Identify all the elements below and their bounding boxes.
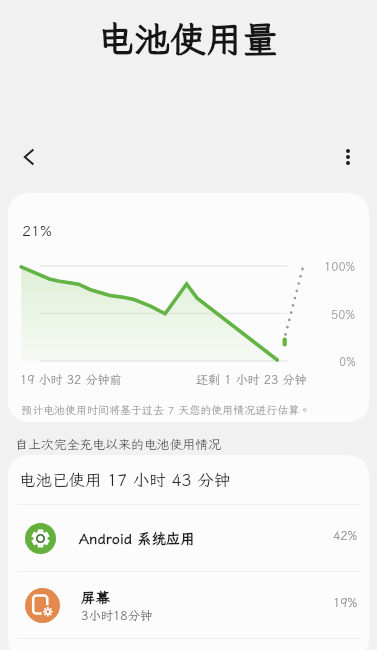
staticText: 42% [333, 527, 358, 543]
staticText: 屏幕 [81, 588, 110, 607]
staticText: 21% [22, 221, 53, 241]
staticText: 19 小时 32 分钟前 [20, 372, 122, 388]
staticText: 50% [331, 307, 356, 323]
button[interactable]: 屏幕 [8, 572, 369, 638]
staticText: Android 系统应用 [79, 529, 195, 548]
staticText: 还剩 1 小时 23 分钟 [196, 372, 307, 388]
staticText: 100% [324, 259, 356, 275]
button[interactable]: Back [7, 135, 51, 179]
button[interactable]: More options [326, 135, 370, 179]
staticText: 电池已使用 17 小时 43 分钟 [19, 469, 231, 491]
staticText: 预计电池使用时间将基于过去 7 天您的使用情况进行估算。 [21, 403, 311, 417]
staticText: 自上次完全充电以来的电池使用情况 [15, 436, 222, 453]
staticText: 电池使用量 [98, 15, 279, 62]
staticText: 3小时18分钟 [81, 607, 153, 623]
staticText: 0% [339, 354, 356, 370]
button[interactable]: Android 系统应用 [8, 505, 369, 571]
staticText: 19% [333, 594, 358, 610]
